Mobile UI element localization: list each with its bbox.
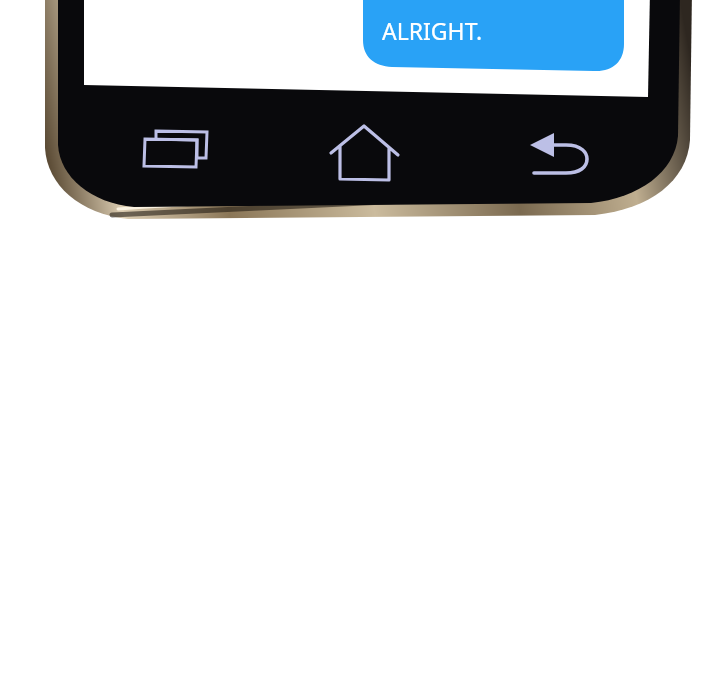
button[interactable]: Recent apps: [118, 110, 228, 196]
button[interactable]: Home: [311, 110, 421, 196]
staticText: ALRIGHT.: [382, 15, 483, 46]
button[interactable]: Back: [503, 110, 613, 196]
